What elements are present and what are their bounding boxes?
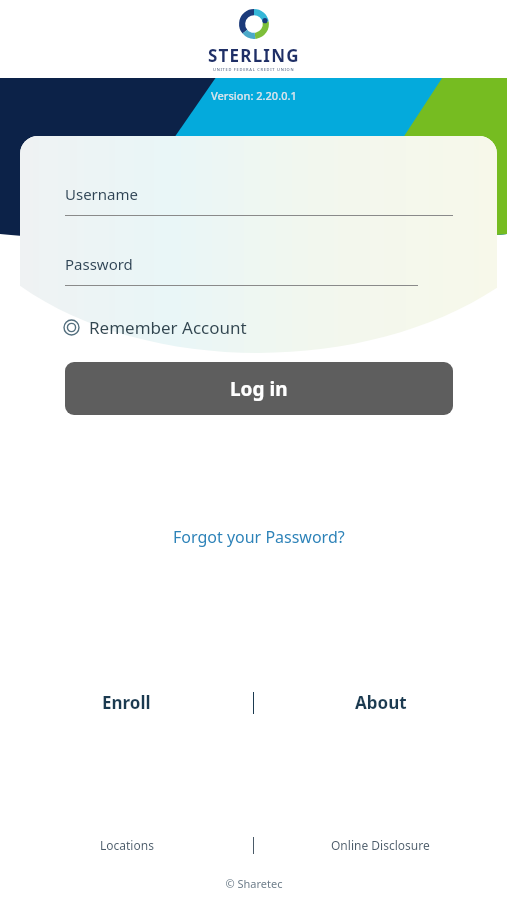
staticText: Enroll bbox=[102, 691, 151, 714]
button[interactable]: Online Disclosure bbox=[321, 832, 440, 858]
button[interactable]: Locations bbox=[90, 832, 164, 858]
staticText: Forgot your Password? bbox=[173, 526, 345, 548]
staticText: STERLING bbox=[208, 44, 300, 67]
staticText: About bbox=[355, 691, 407, 714]
staticText: Password bbox=[65, 254, 133, 274]
staticText: © Sharetec bbox=[225, 876, 283, 891]
button[interactable]: Log in bbox=[65, 362, 453, 415]
staticText: Log in bbox=[230, 376, 288, 402]
staticText: Online Disclosure bbox=[331, 837, 430, 853]
staticText: UNITED FEDERAL CREDIT UNION bbox=[213, 67, 295, 72]
button[interactable]: Enroll bbox=[88, 685, 165, 720]
staticText: Version: 2.20.0.1 bbox=[211, 88, 297, 103]
button[interactable]: About bbox=[341, 685, 421, 720]
staticText: Locations bbox=[100, 837, 154, 853]
button[interactable]: Forgot your Password? bbox=[167, 522, 351, 552]
button[interactable]: Remember Account bbox=[63, 316, 247, 339]
staticText: Remember Account bbox=[89, 316, 247, 339]
staticText: Username bbox=[65, 184, 138, 204]
